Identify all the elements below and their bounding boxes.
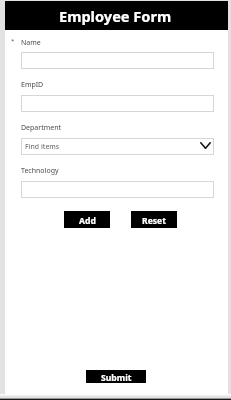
staticText: Find items [25, 142, 60, 151]
staticText: EmpID [21, 80, 44, 90]
staticText: Name [21, 38, 41, 48]
staticText: * [11, 37, 15, 45]
button[interactable]: Technology [21, 181, 214, 198]
button[interactable]: Reset [131, 211, 177, 228]
button[interactable]: Department [21, 138, 214, 155]
staticText: Reset [142, 215, 166, 227]
staticText: Technology [21, 166, 59, 176]
button[interactable]: EmpID [21, 95, 214, 112]
staticText: Employee Form [59, 6, 172, 26]
button[interactable]: Name [21, 52, 214, 69]
staticText: Add [79, 215, 96, 227]
staticText: Department [21, 123, 62, 133]
button[interactable]: Submit [86, 370, 146, 383]
staticText: Submit [101, 372, 132, 384]
button[interactable]: Add [64, 211, 110, 228]
other: Open Department list [200, 142, 211, 149]
